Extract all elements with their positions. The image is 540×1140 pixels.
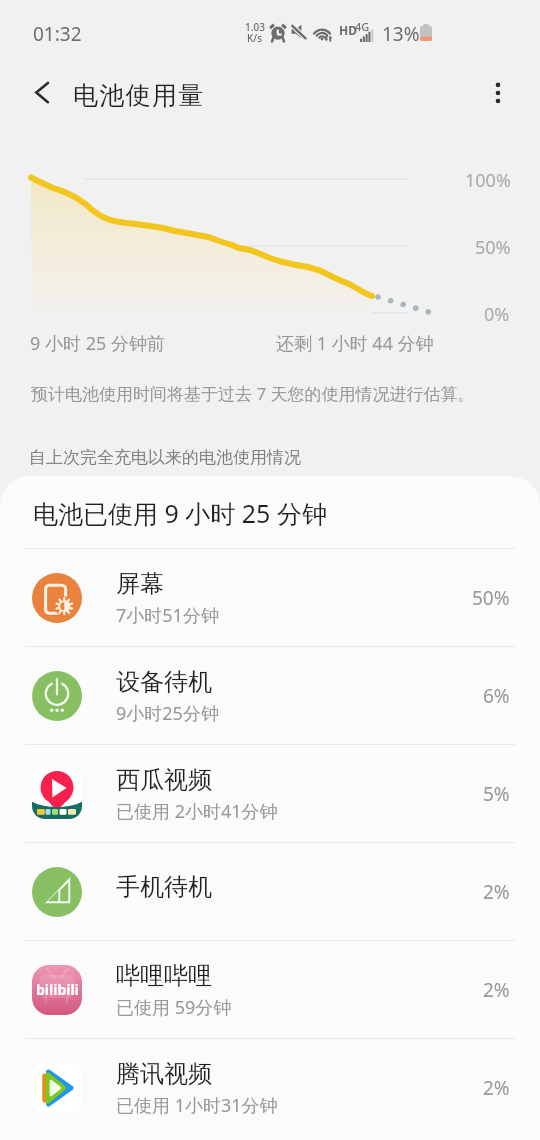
button[interactable]: 设备待机 (0, 647, 540, 744)
staticText: 2% (483, 1075, 510, 1101)
button[interactable]: 腾讯视频 (0, 1039, 540, 1136)
staticText: 50% (472, 585, 510, 611)
button[interactable]: 西瓜视频 (0, 745, 540, 842)
staticText: 已使用 59分钟 (116, 995, 232, 1020)
staticText: HD (339, 22, 357, 38)
staticText: 2% (483, 879, 510, 905)
button[interactable]: 屏幕 (0, 549, 540, 646)
staticText: 电池已使用 9 小时 25 分钟 (33, 496, 327, 530)
staticText: 0% (484, 302, 510, 327)
staticText: 已使用 1小时31分钟 (116, 1093, 278, 1118)
staticText: 9小时25分钟 (116, 701, 219, 726)
staticText: 13% (382, 21, 420, 47)
staticText: 腾讯视频 (116, 1059, 212, 1089)
staticText: 还剩 1 小时 44 分钟 (276, 331, 434, 356)
button[interactable]: Back (18, 69, 66, 117)
staticText: 7小时51分钟 (116, 603, 219, 628)
staticText: 50% (475, 235, 511, 260)
staticText: 已使用 2小时41分钟 (116, 799, 278, 824)
staticText: 6% (483, 683, 510, 709)
staticText: 手机待机 (116, 872, 212, 902)
staticText: 5% (483, 781, 510, 807)
staticText: 01:32 (33, 21, 82, 47)
staticText: 100% (465, 168, 511, 193)
staticText: 9 小时 25 分钟前 (30, 331, 165, 356)
button[interactable]: bilibili (0, 941, 540, 1038)
button[interactable]: 手机待机 (0, 843, 540, 940)
staticText: 1.03 (245, 20, 265, 34)
staticText: 屏幕 (116, 569, 164, 599)
staticText: bilibili (36, 980, 79, 999)
staticText: 预计电池使用时间将基于过去 7 天您的使用情况进行估算。 (31, 382, 475, 405)
button[interactable]: More options (474, 69, 522, 117)
staticText: 电池使用量 (73, 80, 205, 111)
staticText: K/s (247, 31, 263, 45)
staticText: 2% (483, 977, 510, 1003)
staticText: 哔哩哔哩 (116, 961, 212, 991)
staticText: 设备待机 (116, 667, 212, 697)
staticText: 自上次完全充电以来的电池使用情况 (29, 447, 301, 468)
staticText: 4G (355, 19, 370, 34)
staticText: 西瓜视频 (116, 765, 212, 795)
